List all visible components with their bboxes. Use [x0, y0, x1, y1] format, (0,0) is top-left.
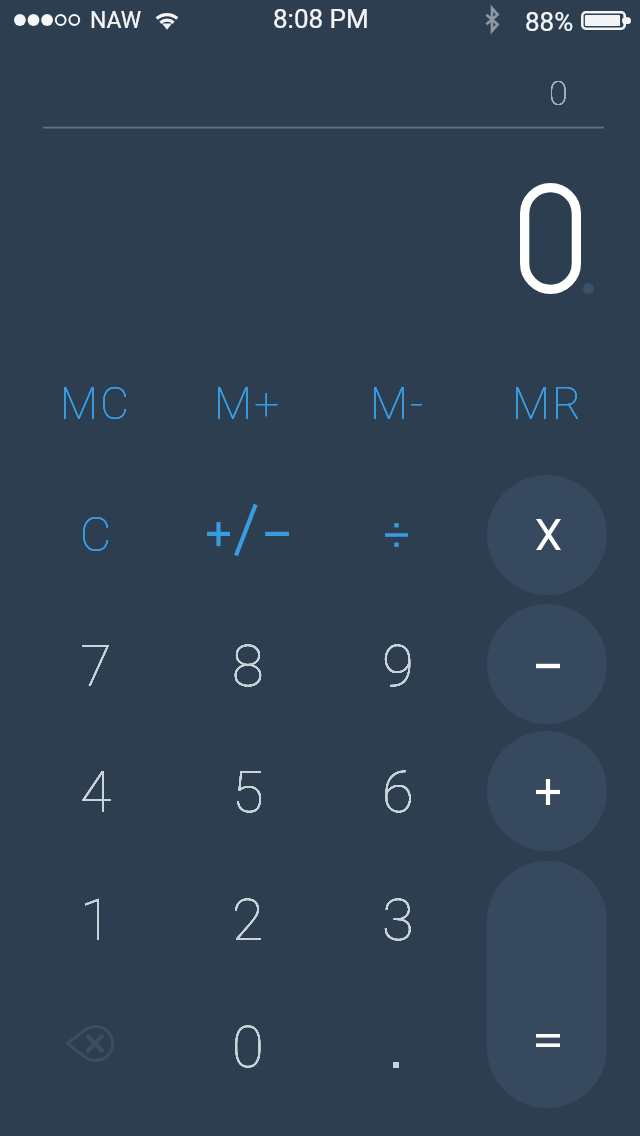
staticText: 7 [80, 632, 112, 700]
staticText: 5 [232, 758, 264, 826]
staticText: MC [60, 378, 132, 430]
staticText: M+ [214, 378, 282, 430]
staticText: 3 [382, 886, 414, 954]
staticText: C [80, 506, 112, 562]
staticText: 1 [80, 886, 112, 954]
staticText: 1 [80, 886, 112, 954]
staticText: 8 [232, 632, 264, 700]
staticText: 3 [382, 886, 414, 954]
button[interactable]: Add [473, 728, 623, 856]
staticText: 5 [232, 758, 264, 826]
staticText: MR [512, 378, 584, 430]
staticText: 2 [232, 886, 264, 954]
staticText: MC [60, 378, 132, 430]
button[interactable]: Divide [323, 470, 473, 598]
button[interactable]: 5 [173, 728, 323, 856]
other: Add [487, 731, 607, 851]
button[interactable]: 1 [21, 856, 171, 984]
button[interactable]: C [21, 470, 171, 598]
staticText: 2 [232, 886, 264, 954]
button[interactable]: 7 [21, 602, 171, 730]
button[interactable]: Backspace [21, 983, 171, 1111]
other: Multiply [487, 475, 607, 595]
staticText: 8 [232, 632, 264, 700]
staticText: M- [370, 378, 426, 430]
staticText: 5 [232, 758, 264, 826]
staticText: 4 [80, 758, 112, 826]
button[interactable]: M- [323, 340, 473, 468]
button[interactable]: M+ [173, 340, 323, 468]
button[interactable]: MR [473, 340, 623, 468]
staticText: C [80, 506, 112, 562]
staticText: M+ [214, 378, 282, 430]
button[interactable]: 4 [21, 728, 171, 856]
staticText: 3 [382, 886, 414, 954]
staticText: 6 [382, 758, 414, 826]
button[interactable]: 6 [323, 728, 473, 856]
staticText: 0 [549, 73, 568, 113]
staticText: C [80, 506, 112, 562]
staticText: 2 [232, 886, 264, 954]
staticText: M- [370, 378, 426, 430]
staticText: 7 [80, 632, 112, 700]
staticText: 0 [549, 73, 568, 113]
staticText: MC [60, 378, 132, 430]
staticText: MR [512, 378, 584, 430]
staticText: MR [512, 378, 584, 430]
staticText: M+ [214, 378, 282, 430]
staticText: C [80, 506, 112, 562]
staticText: 0 [232, 1013, 264, 1081]
staticText: 6 [382, 758, 414, 826]
staticText: 9 [382, 632, 414, 700]
button[interactable]: Decimal point [323, 983, 473, 1111]
staticText: 8:08 PM [273, 4, 369, 34]
button[interactable]: 8 [173, 602, 323, 730]
staticText: M+ [214, 378, 282, 430]
staticText: MC [60, 378, 132, 430]
staticText: 4 [80, 758, 112, 826]
staticText: 2 [232, 886, 264, 954]
staticText: 1 [80, 886, 112, 954]
staticText: 0 [549, 73, 568, 113]
other: Subtract [487, 604, 607, 724]
button[interactable]: Equals [473, 983, 623, 1111]
staticText: 9 [382, 632, 414, 700]
staticText: 0 [232, 1013, 264, 1081]
other: Equals [487, 861, 607, 1108]
staticText: 6 [382, 758, 414, 826]
button[interactable]: MC [21, 340, 171, 468]
staticText: 7 [80, 632, 112, 700]
button[interactable]: 9 [323, 602, 473, 730]
staticText: M- [370, 378, 426, 430]
staticText: 9 [382, 632, 414, 700]
staticText: MR [512, 378, 584, 430]
staticText: 0 [232, 1013, 264, 1081]
staticText: 88% [525, 7, 574, 37]
staticText: 4 [80, 758, 112, 826]
button[interactable]: Subtract [473, 602, 623, 730]
button[interactable]: 3 [323, 856, 473, 984]
button[interactable]: Plus minus [173, 470, 323, 598]
staticText: NAW [90, 7, 142, 34]
staticText: 0 [549, 73, 568, 113]
staticText: M- [370, 378, 426, 430]
staticText: 5 [232, 758, 264, 826]
staticText: 9 [382, 632, 414, 700]
staticText: 1 [80, 886, 112, 954]
staticText: 3 [382, 886, 414, 954]
button[interactable]: 2 [173, 856, 323, 984]
button[interactable]: 0 [173, 983, 323, 1111]
staticText: 8 [232, 632, 264, 700]
staticText: 4 [80, 758, 112, 826]
staticText: 7 [80, 632, 112, 700]
staticText: 0 [232, 1013, 264, 1081]
button[interactable]: Multiply [473, 470, 623, 598]
staticText: 8 [232, 632, 264, 700]
staticText: 6 [382, 758, 414, 826]
